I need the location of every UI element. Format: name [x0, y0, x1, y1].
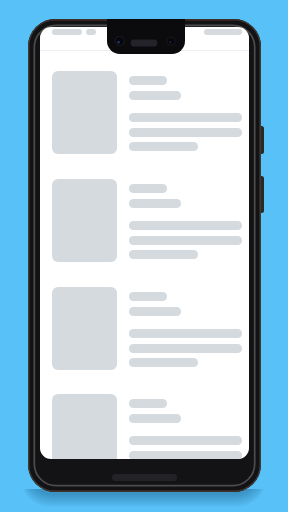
button[interactable]: [52, 394, 249, 459]
button[interactable]: [52, 71, 249, 154]
button[interactable]: [52, 179, 249, 262]
button[interactable]: [52, 287, 249, 370]
